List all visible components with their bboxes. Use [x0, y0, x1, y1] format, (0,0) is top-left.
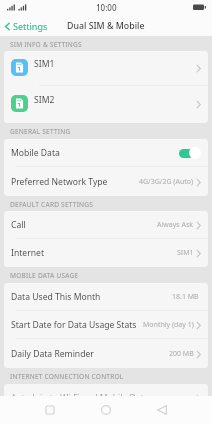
button[interactable]: Mobile Data — [4, 139, 208, 167]
button[interactable]: Data Used This Month — [4, 283, 208, 311]
staticText: GENERAL SETTING — [10, 127, 71, 136]
staticText: MOBILE DATA USAGE — [10, 271, 79, 280]
button[interactable]: Call — [4, 211, 208, 239]
staticText: Daily Data Reminder — [11, 348, 94, 360]
staticText: SIM1 — [177, 248, 194, 258]
staticText: 10:00 — [96, 2, 117, 13]
staticText: SIM2 — [34, 94, 55, 106]
button[interactable]: SIM2 — [4, 86, 208, 123]
staticText: Settings — [13, 20, 48, 32]
button[interactable]: Daily Data Reminder — [4, 339, 208, 368]
button[interactable]: Home — [92, 396, 120, 424]
staticText: Mobile Data — [11, 147, 60, 159]
staticText: SIM INFO & SETTINGS — [10, 40, 82, 49]
staticText: Data Used This Month — [11, 291, 101, 303]
staticText: Monthly (day 1) — [143, 320, 194, 330]
staticText: Start Date for Data Usage Stats — [11, 319, 137, 331]
staticText: Dual SIM & Mobile — [67, 20, 145, 32]
staticText: 4G/3G/2G (Auto) — [139, 177, 194, 187]
staticText: DEFAULT CARD SETTINGS — [10, 200, 94, 209]
staticText: Internet — [11, 247, 44, 259]
button[interactable]: Preferred Network Type — [4, 167, 208, 196]
button[interactable]: Recents — [36, 396, 64, 424]
staticText: 18.1 MB — [172, 292, 199, 302]
staticText: Call — [11, 219, 26, 231]
button[interactable]: SIM1 — [4, 51, 208, 86]
staticText: Auto Join to Wi-Fi and Mobile Data — [11, 392, 149, 404]
staticText: Always Ask — [157, 220, 194, 230]
button[interactable]: Start Date for Data Usage Stats — [4, 311, 208, 339]
staticText: Preferred Network Type — [11, 176, 108, 188]
staticText: INTERNET CONNECTION CONTROL — [10, 372, 124, 381]
button[interactable]: Back — [148, 396, 176, 424]
button[interactable]: Internet — [4, 239, 208, 267]
button[interactable]: Auto Join to Wi-Fi and Mobile Data — [4, 384, 208, 412]
staticText: SIM1 — [34, 58, 55, 70]
staticText: 200 MB — [169, 349, 194, 359]
button[interactable]: Settings — [0, 20, 54, 32]
